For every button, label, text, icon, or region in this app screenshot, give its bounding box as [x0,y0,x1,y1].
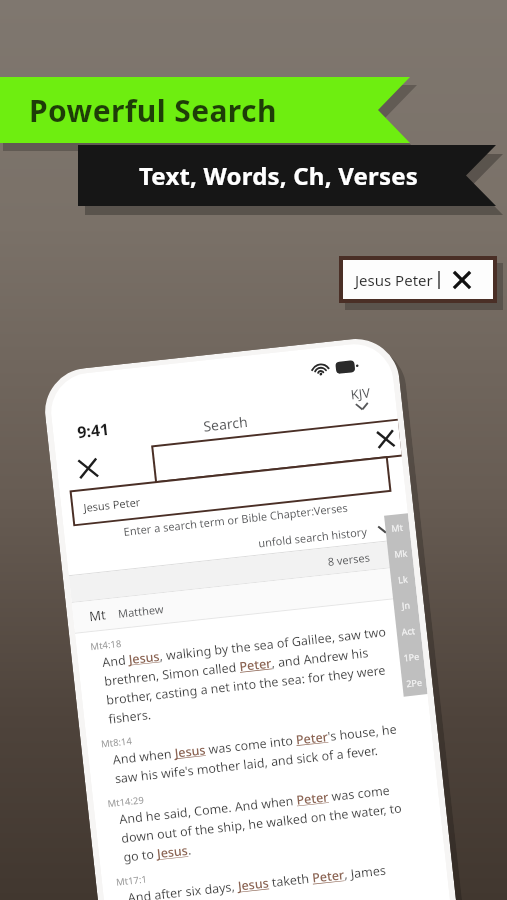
staticText: And he said, Come. And when Peter was co… [118,780,415,866]
button[interactable]: Jn [392,591,419,619]
staticText: Powerful Search [29,90,277,131]
button[interactable]: Lk [390,565,416,593]
staticText: Lk [397,572,409,585]
button[interactable] [153,421,401,481]
staticText: And after six days, Jesus taketh Peter, … [127,862,387,900]
staticText: Jesus Peter [355,270,433,290]
button[interactable]: Jesus Peter [343,260,493,299]
staticText: Text, Words, Ch, Verses [139,159,418,192]
staticText: Mt4:18 [90,637,122,653]
staticText: Search [202,412,249,436]
staticText: Jn [401,598,411,611]
staticText: 2Pe [406,676,423,689]
staticText: And Jesus, walking by the sea of Galilee… [101,622,400,728]
staticText: Act [401,624,416,637]
staticText: Enter a search term or Bible Chapter:Ver… [64,493,407,545]
staticText: Jesus Peter [83,494,141,515]
staticText: And when Jesus was come into Peter's hou… [112,720,406,787]
button[interactable]: 2Pe [401,668,428,697]
staticText: Mt [391,521,404,534]
button[interactable]: KJV [350,383,372,411]
staticText: Mt8:14 [100,734,133,751]
button[interactable]: Close [76,456,100,480]
staticText: Mt17:1 [115,872,148,889]
staticText: Mk [394,546,408,560]
staticText: unfold search history [257,524,368,550]
button[interactable]: Mk [387,539,414,567]
button[interactable]: Mt [384,513,411,541]
staticText: KJV [350,383,372,404]
button[interactable]: 1Pe [398,642,425,671]
button[interactable]: unfold search history [66,514,411,575]
staticText: Mt14:29 [107,793,145,810]
button[interactable]: Clear [452,270,472,290]
button[interactable]: Jesus Peter [72,458,389,524]
staticText: Matthew [117,601,165,621]
staticText: Mt [88,605,107,625]
button[interactable]: Mt [88,566,417,631]
button[interactable]: Act [395,616,422,645]
staticText: 1Pe [403,650,420,663]
staticText: 9:41 [76,418,110,443]
staticText: 8 verses [327,549,371,569]
